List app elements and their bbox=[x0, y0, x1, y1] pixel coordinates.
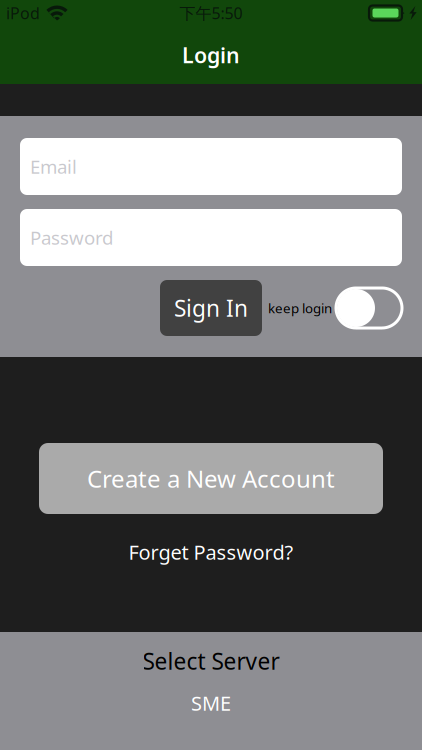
staticText: Login bbox=[182, 41, 240, 69]
button[interactable]: Create a New Account bbox=[39, 443, 383, 514]
staticText: SME bbox=[191, 690, 231, 716]
button[interactable]: SME bbox=[151, 690, 271, 716]
staticText: Select Server bbox=[142, 646, 279, 676]
staticText: Forget Password? bbox=[128, 539, 293, 565]
staticText: Sign In bbox=[174, 293, 248, 323]
staticText: Create a New Account bbox=[87, 463, 335, 494]
button[interactable]: Email bbox=[20, 138, 402, 195]
button[interactable]: Sign In bbox=[160, 280, 262, 336]
button[interactable]: Keep login bbox=[336, 288, 402, 328]
staticText: 下午5:50 bbox=[179, 2, 242, 24]
staticText: Password bbox=[30, 225, 113, 250]
staticText: Email bbox=[30, 154, 77, 179]
staticText: keep login bbox=[268, 299, 332, 317]
staticText: iPod bbox=[6, 2, 40, 24]
button[interactable]: Password bbox=[20, 209, 402, 266]
button[interactable]: Forget Password? bbox=[91, 533, 331, 571]
